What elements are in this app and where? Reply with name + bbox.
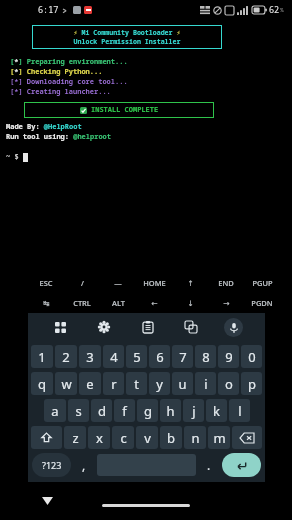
button[interactable]: / [64,273,100,293]
button[interactable]: Clipboard [126,313,169,341]
button[interactable]: ↓ [172,293,208,313]
staticText: — [114,278,122,288]
button[interactable]: x [88,426,110,449]
button[interactable]: 4 [103,345,124,368]
staticText: 5 [133,348,141,366]
button[interactable]: Keyboard modes [38,313,82,341]
button[interactable]: y [149,372,170,395]
staticText: / [81,278,84,288]
staticText: 6 [156,348,164,366]
staticText: 2 [62,348,70,366]
staticText: END [218,278,234,288]
button[interactable]: q [31,372,53,395]
staticText: o [225,375,233,393]
button[interactable]: 2 [55,345,77,368]
staticText: z [72,429,79,447]
staticText: ESC [39,278,53,288]
button[interactable]: → [208,293,244,313]
button[interactable]: . [198,451,220,479]
button[interactable]: c [112,426,134,449]
button[interactable]: ← [136,293,172,313]
button[interactable]: z [64,426,86,449]
button[interactable]: Voice input [224,318,243,337]
staticText: s [75,402,82,420]
button[interactable]: CTRL [64,293,100,313]
staticText: p [248,375,256,393]
button[interactable]: 7 [172,345,193,368]
button[interactable]: n [184,426,206,449]
button[interactable]: 8 [195,345,216,368]
staticText: 0 [248,348,256,366]
staticText: c [120,429,127,447]
button[interactable]: b [160,426,182,449]
button[interactable]: ?123 [32,453,71,477]
button[interactable]: Hide keyboard [38,492,56,510]
button[interactable]: 3 [79,345,101,368]
button[interactable]: 9 [218,345,239,368]
staticText: ?123 [42,459,62,471]
staticText: a [51,402,59,420]
button[interactable]: e [79,372,101,395]
staticText: g [144,402,152,420]
staticText: , [82,457,86,473]
staticText: m [213,429,226,447]
staticText: ↑ [187,279,194,288]
staticText: . [207,457,211,473]
button[interactable]: r [103,372,124,395]
staticText: ALT [112,298,125,308]
staticText: PGUP [252,278,273,288]
button[interactable]: PGDN [244,293,280,313]
staticText: 62 [269,4,280,16]
button[interactable]: ALT [100,293,136,313]
button[interactable]: Backspace [232,426,262,449]
button[interactable]: PGUP [244,273,280,293]
button[interactable]: Shift [31,426,62,449]
button[interactable]: — [100,273,136,293]
button[interactable]: w [55,372,77,395]
button[interactable]: p [241,372,262,395]
staticText: Unlock Permission Installer [36,37,218,46]
button[interactable]: f [114,399,135,422]
staticText: → [223,299,230,308]
button[interactable]: 0 [241,345,262,368]
button[interactable]: a [44,399,66,422]
button[interactable]: ESC [28,273,64,293]
button[interactable]: END [208,273,244,293]
button[interactable]: Settings [82,313,126,341]
button[interactable]: Enter [222,453,261,477]
button[interactable]: g [137,399,158,422]
staticText: 3 [86,348,94,366]
button[interactable]: h [160,399,181,422]
button[interactable]: 1 [31,345,53,368]
staticText: ⚡ Mi Community Bootloader ⚡ [36,28,218,37]
staticText: Run tool using: @helproot [6,132,111,142]
button[interactable]: 6 [149,345,170,368]
staticText: t [134,375,139,393]
button[interactable]: u [172,372,193,395]
staticText: PGDN [251,298,273,308]
staticText: INSTALL COMPLETE [91,105,159,115]
button[interactable]: j [183,399,204,422]
button[interactable]: m [208,426,230,449]
staticText: x [96,429,103,447]
button[interactable]: d [91,399,112,422]
button[interactable]: i [195,372,216,395]
staticText: 1 [38,348,46,366]
staticText: CTRL [73,298,91,308]
button[interactable]: o [218,372,239,395]
button[interactable]: l [229,399,250,422]
button[interactable]: s [68,399,89,422]
button[interactable]: k [206,399,227,422]
staticText: f [122,402,127,420]
button[interactable]: ↹ [28,293,64,313]
button[interactable]: HOME [136,273,172,293]
button[interactable]: 5 [126,345,147,368]
staticText: v [144,429,151,447]
button[interactable]: t [126,372,147,395]
button[interactable]: Translate [169,313,212,341]
staticText: HOME [143,278,166,288]
button[interactable]: , [73,451,95,479]
button[interactable]: ↑ [172,273,208,293]
button[interactable]: v [136,426,158,449]
